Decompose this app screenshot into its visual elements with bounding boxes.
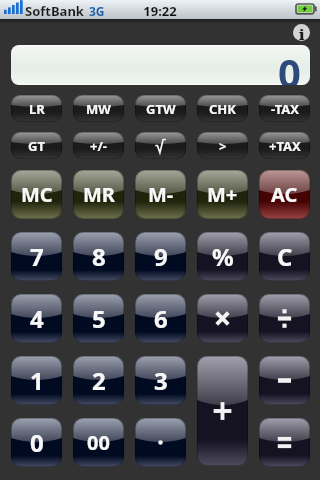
staticText: 0 bbox=[30, 426, 44, 459]
button[interactable]: 1 bbox=[11, 356, 62, 405]
button[interactable]: MW bbox=[73, 95, 124, 122]
staticText: 19:22 bbox=[0, 2, 320, 20]
button[interactable]: 8 bbox=[73, 232, 124, 281]
staticText: 3 bbox=[154, 364, 168, 397]
staticText: 1 bbox=[30, 364, 44, 397]
button[interactable]: GT bbox=[11, 132, 62, 159]
staticText: GT bbox=[28, 137, 45, 155]
button[interactable]: M- bbox=[135, 170, 186, 219]
staticText: LR bbox=[29, 100, 45, 118]
button[interactable]: 9 bbox=[135, 232, 186, 281]
button[interactable]: Square root bbox=[135, 132, 186, 159]
staticText: -TAX bbox=[271, 100, 299, 118]
button[interactable]: % bbox=[197, 232, 248, 281]
button[interactable]: AC bbox=[259, 170, 310, 219]
staticText: AC bbox=[271, 181, 298, 208]
staticText: 5 bbox=[92, 302, 106, 335]
button[interactable]: GTW bbox=[135, 95, 186, 122]
button[interactable]: 5 bbox=[73, 294, 124, 343]
staticText: +TAX bbox=[269, 137, 301, 155]
button[interactable]: Multiply bbox=[197, 294, 248, 343]
staticText: +/- bbox=[90, 137, 107, 155]
staticText: 6 bbox=[154, 302, 168, 335]
button[interactable]: M+ bbox=[197, 170, 248, 219]
staticText: C bbox=[277, 240, 293, 273]
button[interactable]: 00 bbox=[73, 418, 124, 467]
button[interactable]: Decimal point bbox=[135, 418, 186, 467]
staticText: 4 bbox=[30, 302, 44, 335]
button[interactable]: Divide bbox=[259, 294, 310, 343]
button[interactable]: 3 bbox=[135, 356, 186, 405]
staticText: % bbox=[212, 240, 234, 273]
staticText: MW bbox=[86, 100, 111, 118]
staticText: > bbox=[219, 137, 227, 155]
staticText: 8 bbox=[92, 240, 106, 273]
staticText: M+ bbox=[207, 181, 238, 208]
button[interactable]: Minus bbox=[259, 356, 310, 405]
button[interactable]: 0 bbox=[11, 418, 62, 467]
button[interactable]: 6 bbox=[135, 294, 186, 343]
button[interactable]: Equals bbox=[259, 418, 310, 467]
button[interactable]: Plus bbox=[197, 356, 248, 466]
staticText: 9 bbox=[154, 240, 168, 273]
button[interactable]: -TAX bbox=[259, 95, 310, 122]
staticText: MR bbox=[83, 181, 115, 208]
staticText: 2 bbox=[92, 364, 106, 397]
button[interactable]: C bbox=[259, 232, 310, 281]
staticText: 7 bbox=[30, 240, 44, 273]
staticText: SoftBank bbox=[25, 2, 84, 20]
staticText: GTW bbox=[146, 100, 176, 118]
staticText: 0 bbox=[278, 45, 301, 85]
button[interactable]: CHK bbox=[197, 95, 248, 122]
button[interactable]: +TAX bbox=[259, 132, 310, 159]
staticText: i bbox=[299, 24, 305, 41]
button[interactable]: 7 bbox=[11, 232, 62, 281]
button[interactable]: 4 bbox=[11, 294, 62, 343]
button[interactable]: +/- bbox=[73, 132, 124, 159]
staticText: CHK bbox=[209, 100, 236, 118]
staticText: 3G bbox=[89, 3, 105, 19]
button[interactable]: Info bbox=[293, 24, 310, 41]
staticText: MC bbox=[21, 181, 53, 208]
staticText: M- bbox=[148, 181, 174, 208]
button[interactable]: MC bbox=[11, 170, 62, 219]
button[interactable]: 2 bbox=[73, 356, 124, 405]
button[interactable]: MR bbox=[73, 170, 124, 219]
button[interactable]: LR bbox=[11, 95, 62, 122]
staticText: 00 bbox=[87, 429, 110, 456]
button[interactable]: > bbox=[197, 132, 248, 159]
